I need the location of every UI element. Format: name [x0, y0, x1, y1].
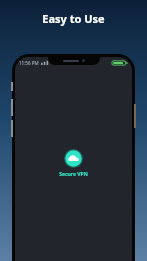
staticText: Secure VPN	[59, 171, 88, 178]
button[interactable]: Secure VPN	[57, 147, 90, 180]
staticText: 11:56 PM	[19, 60, 39, 66]
staticText: Easy to Use	[42, 11, 105, 26]
